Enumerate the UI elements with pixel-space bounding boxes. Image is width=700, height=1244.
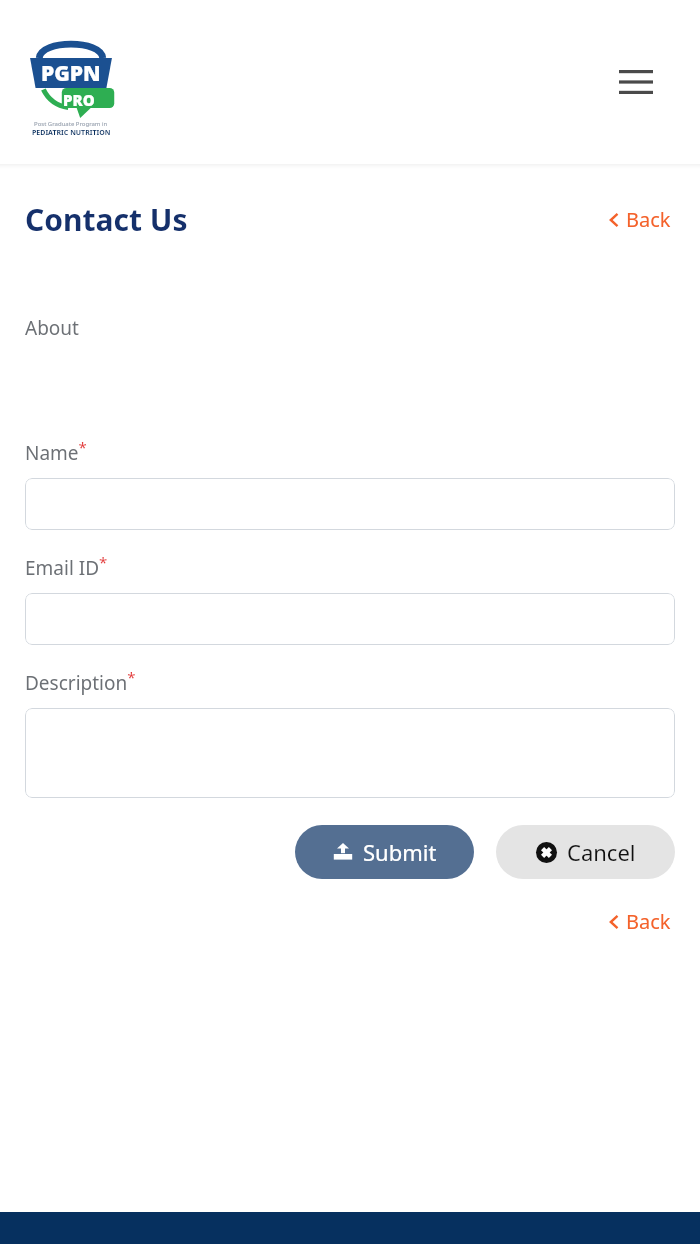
staticText: PRO — [63, 90, 95, 110]
staticText: About — [25, 315, 79, 341]
button[interactable]: PGPN Pro home — [25, 38, 117, 138]
button[interactable] — [25, 478, 675, 530]
staticText: Cancel — [567, 837, 636, 867]
staticText: Email ID* — [25, 552, 108, 581]
staticText: Description* — [25, 667, 136, 696]
staticText: Contact Us — [25, 199, 188, 240]
staticText: PEDIATRIC NUTRITION — [32, 128, 111, 138]
button[interactable]: Back — [605, 202, 675, 237]
staticText: Name* — [25, 437, 87, 466]
button[interactable] — [25, 593, 675, 645]
button[interactable]: Cancel — [496, 825, 675, 879]
button[interactable] — [25, 708, 675, 798]
staticText: Submit — [363, 837, 437, 867]
staticText: Back — [626, 206, 671, 233]
staticText: Post Graduate Program in — [34, 120, 108, 128]
button[interactable]: Back — [605, 904, 675, 939]
button[interactable]: Menu — [614, 60, 658, 104]
staticText: PGPN — [41, 59, 101, 88]
staticText: Back — [626, 908, 671, 935]
button[interactable]: Submit — [295, 825, 474, 879]
